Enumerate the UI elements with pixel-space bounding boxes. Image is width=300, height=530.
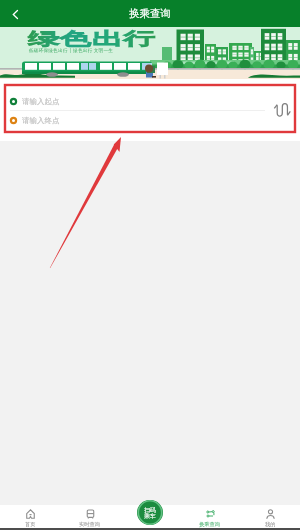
button[interactable]: 请输入终点	[0, 111, 300, 129]
staticText: 首页	[25, 521, 36, 528]
button[interactable]: Back	[4, 3, 26, 25]
staticText: 请输入终点	[22, 116, 60, 125]
button[interactable]: 实时查询	[60, 505, 120, 530]
button[interactable]: 换乘查询	[180, 505, 240, 530]
staticText: 换乘查询	[129, 7, 171, 20]
staticText: 扫码 乘车	[144, 506, 156, 520]
staticText: 低碳环保绿色出行 | 绿色出行 文明一生	[29, 47, 114, 53]
staticText: 绿色出行	[28, 28, 156, 50]
button[interactable]: 扫码 乘车	[137, 500, 163, 525]
button[interactable]: 请输入起点	[0, 92, 300, 110]
staticText: 实时查询	[79, 521, 101, 528]
staticText: 我的	[265, 521, 276, 528]
staticText: 换乘查询	[199, 521, 221, 528]
button[interactable]: 我的	[240, 505, 300, 530]
button[interactable]: Swap start and end	[272, 100, 292, 120]
button[interactable]: 首页	[0, 505, 60, 530]
staticText: 请输入起点	[22, 97, 60, 106]
